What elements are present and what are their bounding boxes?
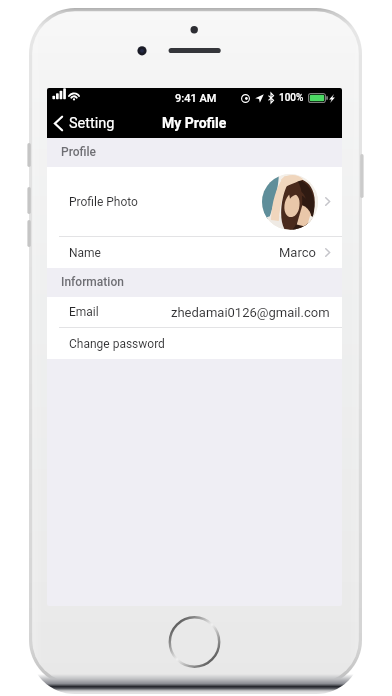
staticText: Profile Photo xyxy=(69,195,138,209)
staticText: Change password xyxy=(69,337,165,351)
staticText: Profile xyxy=(61,145,97,159)
staticText: My Profile xyxy=(162,115,227,131)
button[interactable]: Change password xyxy=(47,328,342,359)
other: Open xyxy=(325,248,330,257)
staticText: 100% xyxy=(279,92,304,104)
staticText: Information xyxy=(61,275,124,289)
other: Open xyxy=(325,197,330,206)
staticText: Marco xyxy=(279,245,316,260)
staticText: 9:41 AM xyxy=(175,92,217,105)
staticText: Email xyxy=(69,305,99,319)
button[interactable]: Profile Photo xyxy=(47,167,342,236)
button[interactable]: Email xyxy=(47,297,342,327)
staticText: Setting xyxy=(69,115,115,132)
button[interactable]: Name xyxy=(47,237,342,268)
staticText: zhedamai0126@gmail.com xyxy=(171,305,330,320)
staticText: Name xyxy=(69,246,101,260)
button[interactable]: Setting xyxy=(47,110,123,137)
